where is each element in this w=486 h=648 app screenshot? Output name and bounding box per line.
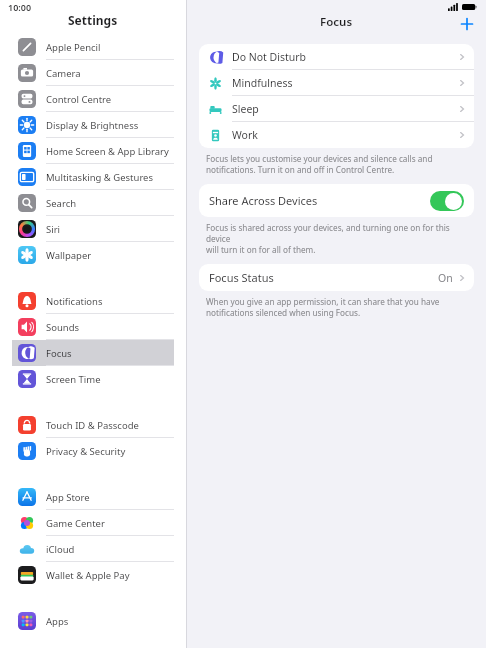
staticText: Share Across Devices — [209, 193, 318, 208]
button[interactable]: Notifications — [12, 288, 174, 314]
staticText: Work — [232, 128, 258, 142]
button[interactable]: Focus Status — [199, 264, 474, 291]
button[interactable]: Game Center — [12, 510, 174, 536]
button[interactable]: Mindfulness — [199, 70, 474, 96]
button[interactable]: Control Centre — [12, 86, 174, 112]
staticText: Siri — [46, 223, 61, 236]
staticText: On — [438, 271, 453, 285]
staticText: Wallet & Apple Pay — [46, 569, 130, 582]
staticText: Camera — [46, 67, 81, 80]
button[interactable]: Display & Brightness — [12, 112, 174, 138]
staticText: When you give an app permission, it can … — [206, 296, 440, 318]
button[interactable]: App Store — [12, 484, 174, 510]
staticText: Focus — [46, 347, 72, 360]
staticText: Search — [46, 197, 77, 210]
staticText: iCloud — [46, 543, 75, 556]
button[interactable]: Wallpaper — [12, 242, 174, 268]
staticText: Focus — [320, 14, 353, 30]
staticText: Apple Pencil — [46, 41, 101, 54]
button[interactable]: Do Not Disturb — [199, 44, 474, 70]
staticText: App Store — [46, 491, 90, 504]
staticText: Settings — [68, 12, 118, 28]
button[interactable]: Apple Pencil — [12, 34, 174, 60]
staticText: Focus Status — [209, 270, 274, 285]
button[interactable]: Wallet & Apple Pay — [12, 562, 174, 588]
button[interactable]: Camera — [12, 60, 174, 86]
staticText: Do Not Disturb — [232, 50, 307, 64]
staticText: Touch ID & Passcode — [46, 419, 139, 432]
staticText: Multitasking & Gestures — [46, 171, 154, 184]
button[interactable]: Multitasking & Gestures — [12, 164, 174, 190]
staticText: Sleep — [232, 102, 259, 116]
button[interactable]: Privacy & Security — [12, 438, 174, 464]
staticText: Apps — [46, 615, 69, 628]
button[interactable]: Share Across Devices — [199, 184, 474, 217]
staticText: Focus is shared across your devices, and… — [206, 222, 472, 255]
staticText: Privacy & Security — [46, 445, 126, 458]
button[interactable]: Siri — [12, 216, 174, 242]
button[interactable]: Focus — [12, 340, 174, 366]
button[interactable]: Touch ID & Passcode — [12, 412, 174, 438]
button[interactable]: Add Focus — [456, 14, 478, 34]
staticText: Home Screen & App Library — [46, 145, 169, 158]
button[interactable]: Search — [12, 190, 174, 216]
staticText: Sounds — [46, 321, 80, 334]
button[interactable]: Sounds — [12, 314, 174, 340]
staticText: Notifications — [46, 295, 103, 308]
staticText: Mindfulness — [232, 76, 293, 90]
button[interactable]: Home Screen & App Library — [12, 138, 174, 164]
button[interactable]: Screen Time — [12, 366, 174, 392]
staticText: Screen Time — [46, 373, 101, 386]
button[interactable]: Apps — [12, 608, 174, 634]
staticText: Wallpaper — [46, 249, 92, 262]
button[interactable]: Work — [199, 122, 474, 148]
staticText: 10:00 — [8, 1, 32, 13]
staticText: Game Center — [46, 517, 105, 530]
staticText: Control Centre — [46, 93, 112, 106]
button[interactable]: Sleep — [199, 96, 474, 122]
staticText: Display & Brightness — [46, 119, 139, 132]
staticText: Focus lets you customise your devices an… — [206, 153, 433, 175]
button[interactable]: iCloud — [12, 536, 174, 562]
